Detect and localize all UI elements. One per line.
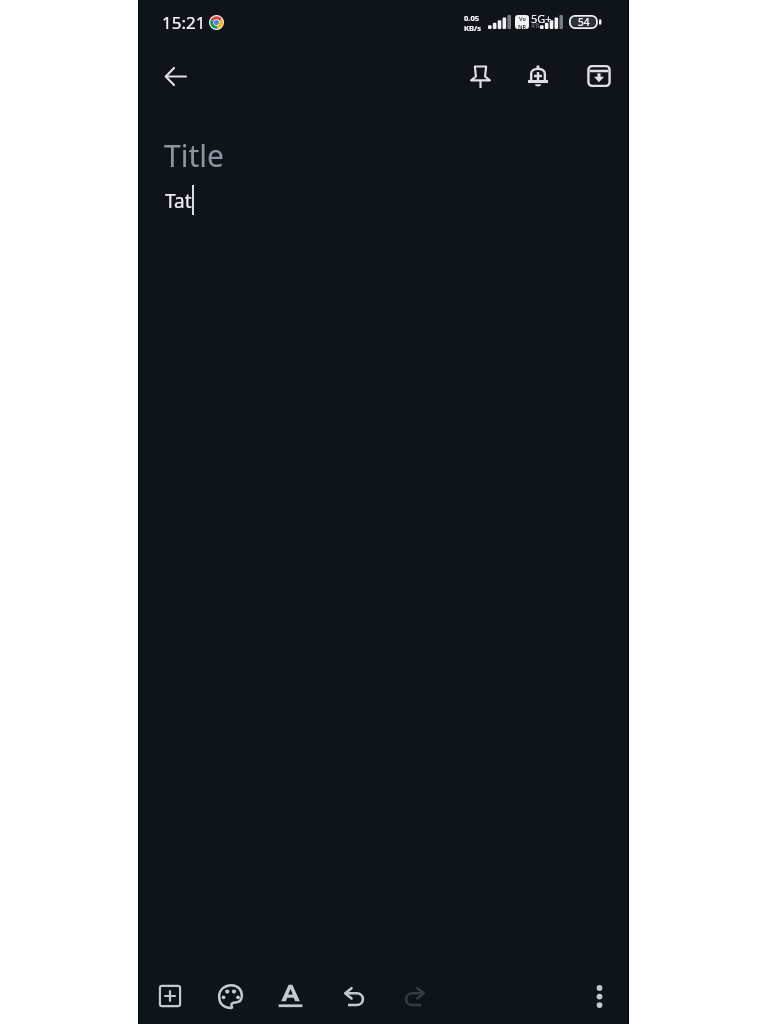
button[interactable]: Pin bbox=[456, 52, 504, 100]
button[interactable]: More options bbox=[576, 973, 622, 1019]
button[interactable]: Undo bbox=[331, 973, 377, 1019]
staticText: 4⇅ bbox=[531, 21, 541, 31]
staticText: 15:21 bbox=[162, 11, 206, 34]
staticText: KB/s bbox=[464, 23, 482, 33]
button[interactable]: Add reminder bbox=[514, 52, 562, 100]
button[interactable]: Title bbox=[155, 130, 605, 176]
button[interactable]: Redo bbox=[391, 973, 437, 1019]
button[interactable]: Back bbox=[151, 52, 199, 100]
button[interactable]: Text format bbox=[267, 972, 313, 1018]
button[interactable]: Archive bbox=[575, 52, 623, 100]
staticText: Title bbox=[164, 135, 224, 176]
staticText: Tat bbox=[165, 188, 192, 214]
button[interactable]: Add attachment bbox=[147, 973, 193, 1019]
staticText: 54 bbox=[578, 15, 590, 29]
button[interactable]: Color palette bbox=[207, 973, 253, 1019]
staticText: 5G+ bbox=[531, 11, 552, 26]
button[interactable]: Tat bbox=[155, 180, 605, 960]
staticText: 0.05 bbox=[464, 13, 480, 23]
staticText: Vo bbox=[519, 15, 526, 22]
staticText: NR bbox=[518, 23, 527, 29]
